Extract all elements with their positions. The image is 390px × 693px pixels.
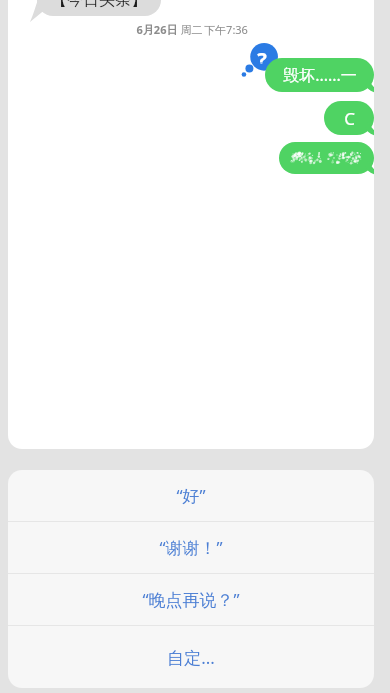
button[interactable]: “好”: [8, 470, 374, 521]
button[interactable]: “谢谢！”: [8, 522, 374, 573]
staticText: 6月26日: [135, 22, 179, 37]
staticText: 毁坏......一: [283, 64, 357, 86]
staticText: 下午7:36: [204, 22, 248, 37]
staticText: C: [344, 107, 355, 130]
button[interactable]: “晚点再说？”: [8, 574, 374, 625]
button[interactable]: 自定...: [8, 626, 374, 688]
staticText: 自定...: [167, 646, 215, 669]
staticText: “谢谢！”: [159, 536, 223, 559]
staticText: “好”: [176, 484, 206, 507]
staticText: 周二: [179, 22, 204, 37]
staticText: “晚点再说？”: [142, 588, 240, 611]
other: Question emoji: [241, 40, 283, 82]
staticText: 【今日头条】: [51, 0, 147, 10]
staticText: ?: [257, 46, 267, 64]
